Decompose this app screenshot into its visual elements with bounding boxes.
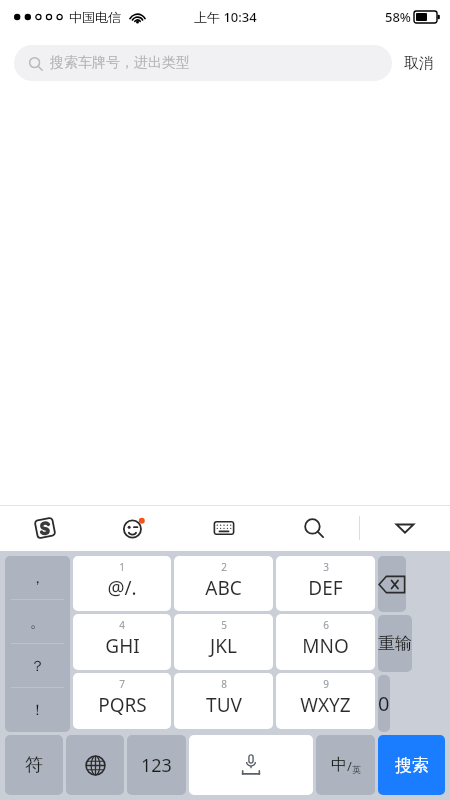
- staticText: 4: [119, 618, 125, 632]
- staticText: PQRS: [98, 692, 147, 718]
- staticText: WXYZ: [300, 692, 351, 718]
- staticText: DEF: [308, 575, 343, 601]
- staticText: 中国电信: [69, 9, 121, 25]
- button[interactable]: 123: [127, 735, 186, 795]
- staticText: 符: [25, 754, 43, 777]
- button[interactable]: 9: [276, 673, 375, 729]
- staticText: ，: [30, 569, 45, 588]
- button[interactable]: 8: [174, 673, 273, 729]
- staticText: 1: [119, 560, 125, 574]
- staticText: 中: [331, 755, 347, 775]
- button[interactable]: Emoji: [89, 505, 179, 551]
- staticText: ！: [30, 701, 45, 720]
- staticText: 搜索: [395, 755, 429, 776]
- staticText: 6: [323, 618, 329, 632]
- button[interactable]: 1: [73, 556, 171, 611]
- staticText: 搜索车牌号，进出类型: [50, 54, 190, 72]
- staticText: 8: [221, 677, 227, 691]
- staticText: JKL: [210, 633, 237, 659]
- staticText: 9: [323, 677, 329, 691]
- staticText: 。: [30, 613, 45, 632]
- button[interactable]: 6: [276, 614, 375, 670]
- button[interactable]: ，: [5, 556, 70, 600]
- staticText: 2: [221, 560, 227, 574]
- staticText: /: [347, 757, 352, 775]
- button[interactable]: 重输: [378, 615, 412, 672]
- button[interactable]: 7: [73, 673, 171, 729]
- button[interactable]: 4: [73, 614, 171, 670]
- staticText: 5: [221, 618, 227, 632]
- button[interactable]: 中: [316, 735, 375, 795]
- button[interactable]: Switch language: [66, 735, 124, 795]
- staticText: GHI: [105, 633, 140, 659]
- button[interactable]: 0: [378, 675, 390, 732]
- button[interactable]: 5: [174, 614, 273, 670]
- staticText: 58%: [385, 8, 411, 26]
- button[interactable]: 取消: [392, 48, 436, 79]
- button[interactable]: ？: [5, 644, 70, 688]
- staticText: 3: [323, 560, 329, 574]
- button[interactable]: 3: [276, 556, 375, 611]
- button[interactable]: Sogou input: [0, 505, 89, 551]
- staticText: TUV: [206, 692, 242, 718]
- staticText: 英: [352, 764, 361, 775]
- staticText: 123: [141, 753, 172, 778]
- staticText: @/.: [107, 575, 137, 601]
- staticText: 0: [378, 690, 390, 717]
- staticText: ？: [30, 657, 45, 676]
- staticText: 7: [119, 677, 125, 691]
- button[interactable]: ！: [5, 688, 70, 732]
- button[interactable]: Search: [269, 505, 359, 551]
- button[interactable]: Space / voice input: [189, 735, 313, 795]
- staticText: MNO: [302, 633, 349, 659]
- button[interactable]: Backspace: [378, 556, 406, 612]
- button[interactable]: Keyboard layout: [179, 505, 269, 551]
- staticText: 重输: [378, 633, 412, 654]
- button[interactable]: 搜索: [378, 735, 445, 795]
- button[interactable]: Hide keyboard: [360, 505, 450, 551]
- staticText: ABC: [205, 575, 242, 601]
- staticText: 取消: [404, 54, 434, 73]
- button[interactable]: 搜索车牌号，进出类型: [14, 45, 392, 81]
- button[interactable]: 符: [5, 735, 63, 795]
- button[interactable]: 。: [5, 600, 70, 644]
- staticText: 上午 10:34: [194, 8, 257, 26]
- button[interactable]: 2: [174, 556, 273, 611]
